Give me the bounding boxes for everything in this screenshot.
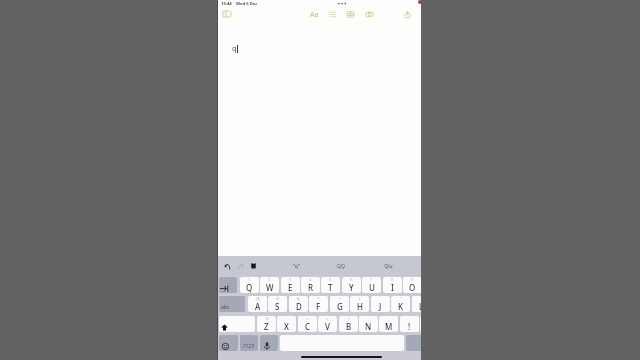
staticText: % [265, 316, 269, 322]
button[interactable] [219, 316, 255, 332]
button[interactable]: 6 [342, 277, 361, 293]
staticText: . [409, 316, 411, 322]
button[interactable]: 8 [383, 277, 402, 293]
button[interactable]: 5 [321, 277, 340, 293]
staticText: + [306, 316, 309, 322]
button[interactable]: Aa [308, 9, 320, 20]
button[interactable]: Share [401, 8, 413, 20]
staticText: @ [256, 296, 260, 302]
staticText: 8 [391, 277, 394, 283]
staticText: V [325, 321, 330, 332]
staticText: 6 [350, 277, 353, 283]
staticText: " [400, 296, 402, 302]
staticText: Aa [310, 10, 319, 20]
staticText: ( [339, 296, 341, 302]
button[interactable]: ) [350, 296, 369, 312]
button[interactable]: & [289, 296, 308, 312]
button[interactable]: ? [420, 316, 421, 332]
staticText: ; [368, 316, 370, 322]
staticText: & [297, 296, 301, 302]
staticText: A [255, 301, 261, 312]
button[interactable]: 7 [362, 277, 381, 293]
button[interactable]: 3 [281, 277, 300, 293]
button[interactable]: 2 [260, 277, 279, 293]
staticText: W [266, 282, 274, 293]
staticText: 4 [309, 277, 312, 283]
button[interactable]: Table [344, 8, 356, 20]
button[interactable]: Qiu [368, 256, 408, 276]
button[interactable]: 1 [240, 277, 259, 293]
staticText: T [328, 282, 333, 293]
button[interactable]: : [412, 296, 421, 312]
button[interactable]: 9 [403, 277, 421, 293]
staticText: 1 [248, 277, 251, 283]
staticText: ) [359, 296, 361, 302]
button[interactable]: . [400, 316, 419, 332]
staticText: B [346, 321, 352, 332]
button[interactable]: ( [330, 296, 349, 312]
button[interactable]: Checklist [326, 8, 338, 20]
button[interactable]: ; [359, 316, 378, 332]
staticText: Qiu [384, 263, 393, 270]
staticText: = [326, 316, 329, 322]
button[interactable]: abc [219, 296, 245, 312]
staticText: M [385, 321, 393, 332]
staticText: Wed 6 Dec [236, 1, 258, 7]
staticText: E [288, 282, 293, 293]
staticText: I [391, 282, 394, 293]
staticText: X [284, 321, 289, 332]
button[interactable]: Undo [223, 262, 232, 271]
button[interactable]: ' [371, 296, 390, 312]
button[interactable]: Paste [249, 261, 258, 270]
button[interactable]: Camera [363, 8, 375, 20]
button[interactable]: Redo [236, 262, 245, 271]
button[interactable] [219, 277, 237, 293]
button[interactable]: # [268, 296, 287, 312]
button[interactable] [219, 335, 238, 351]
button[interactable]: @ [248, 296, 267, 312]
staticText: q [232, 43, 237, 53]
staticText: L [419, 301, 421, 312]
staticText: G [337, 301, 343, 312]
staticText: O [409, 282, 416, 293]
staticText: R [308, 282, 314, 293]
button[interactable]: / [339, 316, 358, 332]
staticText: ' [380, 296, 381, 302]
staticText: 2 [268, 277, 271, 283]
staticText: D [296, 301, 302, 312]
staticText: ! [408, 321, 411, 332]
staticText: 3 [289, 277, 292, 283]
staticText: N [365, 321, 372, 332]
staticText: “q” [293, 263, 300, 270]
staticText: K [398, 301, 404, 312]
staticText: - [286, 316, 288, 322]
button[interactable]: “q” [276, 256, 316, 276]
staticText: 5 [329, 277, 332, 283]
button[interactable]: = [318, 316, 337, 332]
staticText: S [275, 301, 280, 312]
button[interactable]: " [391, 296, 410, 312]
button[interactable] [260, 335, 278, 351]
staticText: 7 [370, 277, 373, 283]
staticText: H [357, 301, 363, 312]
button[interactable]: 4 [301, 277, 320, 293]
staticText: F [316, 301, 321, 312]
button[interactable]: * [309, 296, 328, 312]
button[interactable]: + [298, 316, 317, 332]
staticText: Y [349, 282, 354, 293]
button[interactable]: - [277, 316, 296, 332]
staticText: # [276, 296, 279, 302]
button[interactable]: , [379, 316, 398, 332]
staticText: J [379, 301, 382, 312]
staticText: QQ [337, 263, 345, 270]
staticText: Z [264, 321, 269, 332]
button[interactable]: Sidebar [221, 8, 233, 20]
button[interactable]: % [257, 316, 276, 332]
button[interactable]: QQ [321, 256, 361, 276]
staticText: , [388, 316, 390, 322]
staticText: U [369, 282, 375, 293]
staticText: .?123 [242, 343, 255, 350]
button[interactable]: .?123 [240, 335, 258, 351]
